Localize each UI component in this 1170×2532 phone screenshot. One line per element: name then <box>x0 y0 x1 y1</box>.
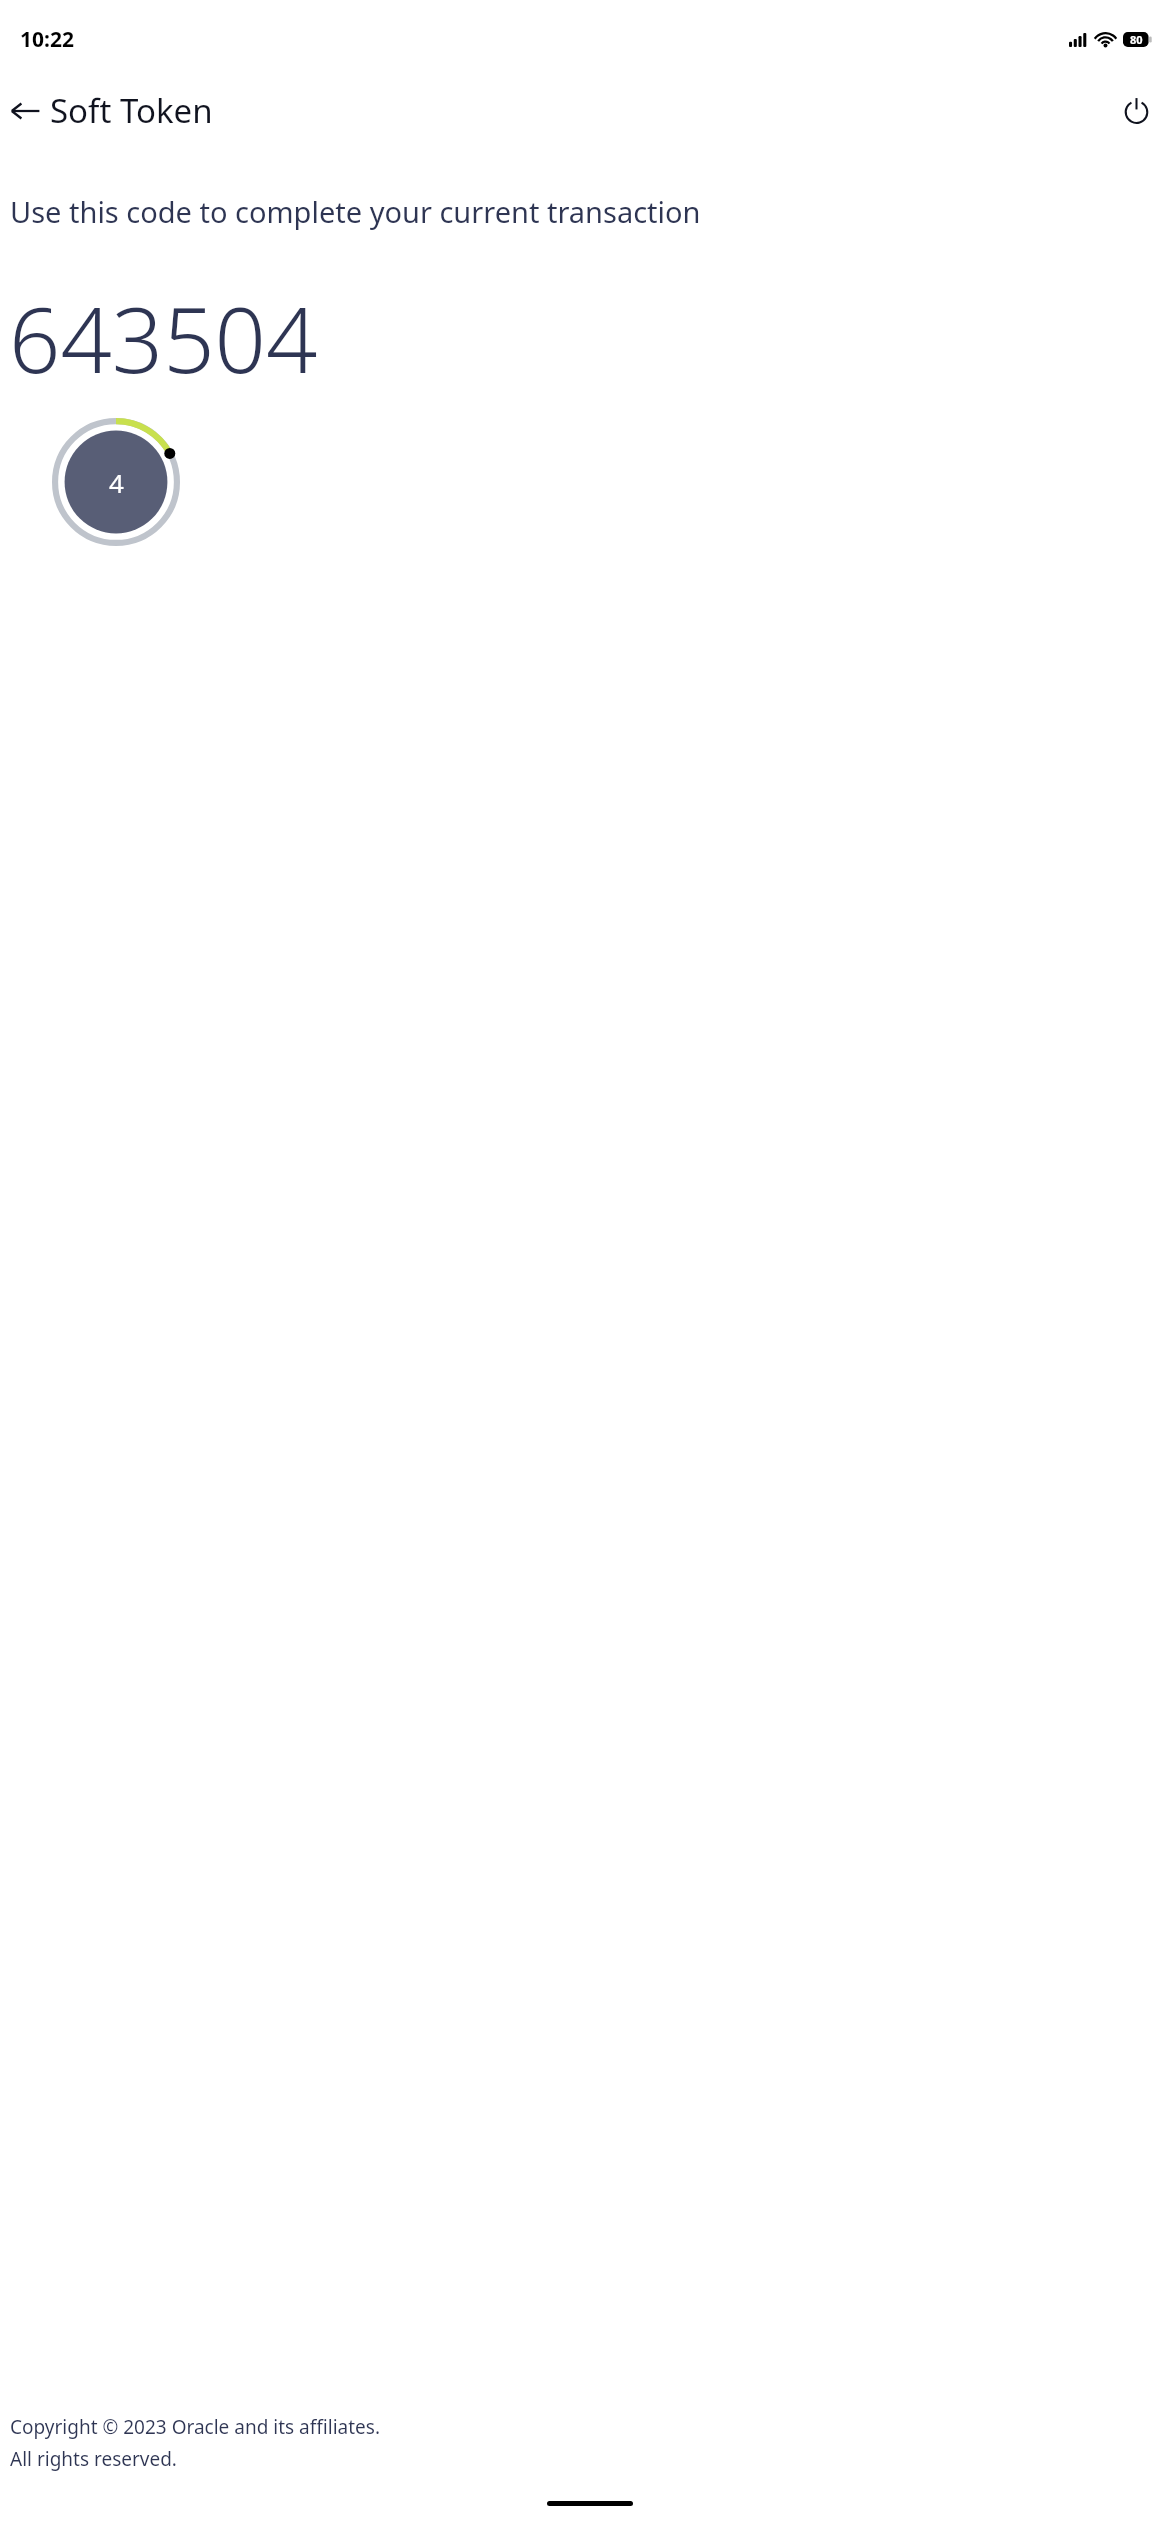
staticText: 10:22 <box>20 25 74 54</box>
staticText: Copyright © 2023 Oracle and its affiliat… <box>10 2414 380 2440</box>
button[interactable]: Power <box>1115 89 1158 132</box>
other: Back <box>10 96 40 126</box>
staticText: 643504 <box>9 277 318 400</box>
staticText: 4 <box>109 465 124 500</box>
staticText: Soft Token <box>50 88 213 133</box>
staticText: Use this code to complete your current t… <box>10 192 1140 231</box>
button[interactable]: Back <box>0 84 223 137</box>
staticText: All rights reserved. <box>10 2446 177 2472</box>
staticText: 80 <box>1130 32 1143 47</box>
